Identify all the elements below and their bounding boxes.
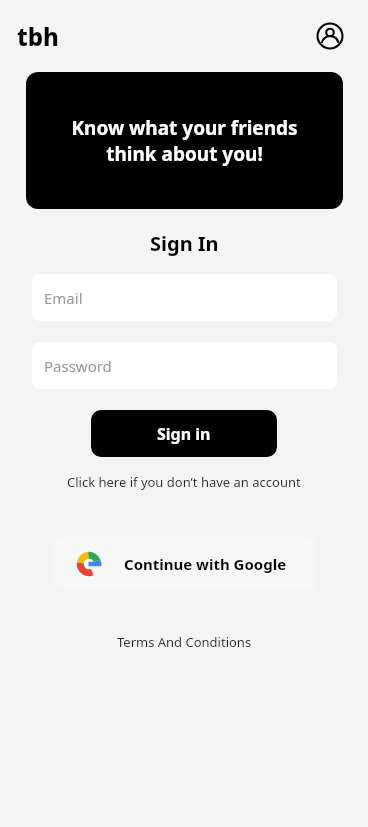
button[interactable]: Email <box>32 274 337 321</box>
staticText: Terms And Conditions <box>117 633 252 651</box>
staticText: Sign In <box>150 230 219 257</box>
staticText: Continue with Google <box>124 554 287 574</box>
button[interactable]: Sign in <box>91 410 277 457</box>
staticText: Know what your friends think about you! <box>71 115 298 167</box>
staticText: Email <box>44 288 83 308</box>
button[interactable]: Click here if you don’t have an account <box>61 470 307 494</box>
button[interactable]: Password <box>32 342 337 389</box>
staticText: Sign in <box>157 423 211 445</box>
button[interactable]: Continue with Google <box>53 537 317 590</box>
staticText: Password <box>44 356 112 376</box>
button[interactable]: Account <box>310 16 350 56</box>
button[interactable]: Terms And Conditions <box>111 630 258 654</box>
staticText: Click here if you don’t have an account <box>67 473 301 491</box>
staticText: tbh <box>17 20 59 53</box>
